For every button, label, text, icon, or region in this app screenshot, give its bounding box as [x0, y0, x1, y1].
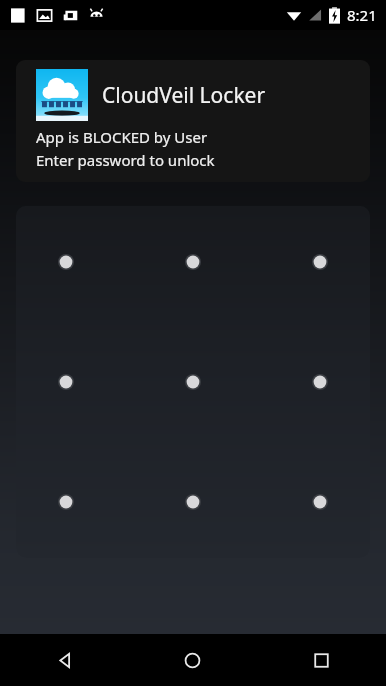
staticText: 8:21 [347, 5, 377, 25]
button[interactable]: Home [128, 634, 257, 686]
other: CloudVeil Locker app icon [36, 69, 88, 121]
button[interactable]: Recent apps [257, 634, 386, 686]
staticText: CloudVeil Locker [102, 81, 266, 110]
button[interactable]: Pattern lock grid [16, 206, 370, 558]
button[interactable]: Back [0, 634, 128, 686]
button[interactable]: CloudVeil Locker app icon [16, 60, 370, 182]
staticText: App is BLOCKED by User [36, 127, 208, 147]
staticText: Enter password to unlock [36, 150, 215, 170]
